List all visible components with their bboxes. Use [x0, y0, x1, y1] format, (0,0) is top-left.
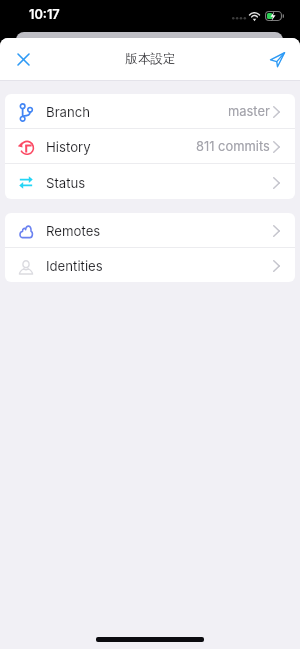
staticText: 811 commits	[196, 139, 270, 155]
staticText: master	[228, 104, 270, 120]
button[interactable]: Send	[262, 44, 292, 74]
staticText: Identities	[46, 258, 103, 274]
button[interactable]: Identities	[5, 248, 295, 282]
staticText: Branch	[46, 104, 91, 120]
button[interactable]: Status	[5, 164, 295, 199]
button[interactable]: Close	[8, 44, 38, 74]
staticText: Status	[46, 175, 86, 191]
button[interactable]: Remotes	[5, 213, 295, 248]
staticText: History	[46, 139, 91, 155]
button[interactable]: History	[5, 129, 295, 164]
staticText: 10:17	[29, 7, 60, 22]
staticText: Remotes	[46, 223, 101, 239]
staticText: 版本設定	[125, 51, 176, 67]
button[interactable]: Branch	[5, 94, 295, 129]
